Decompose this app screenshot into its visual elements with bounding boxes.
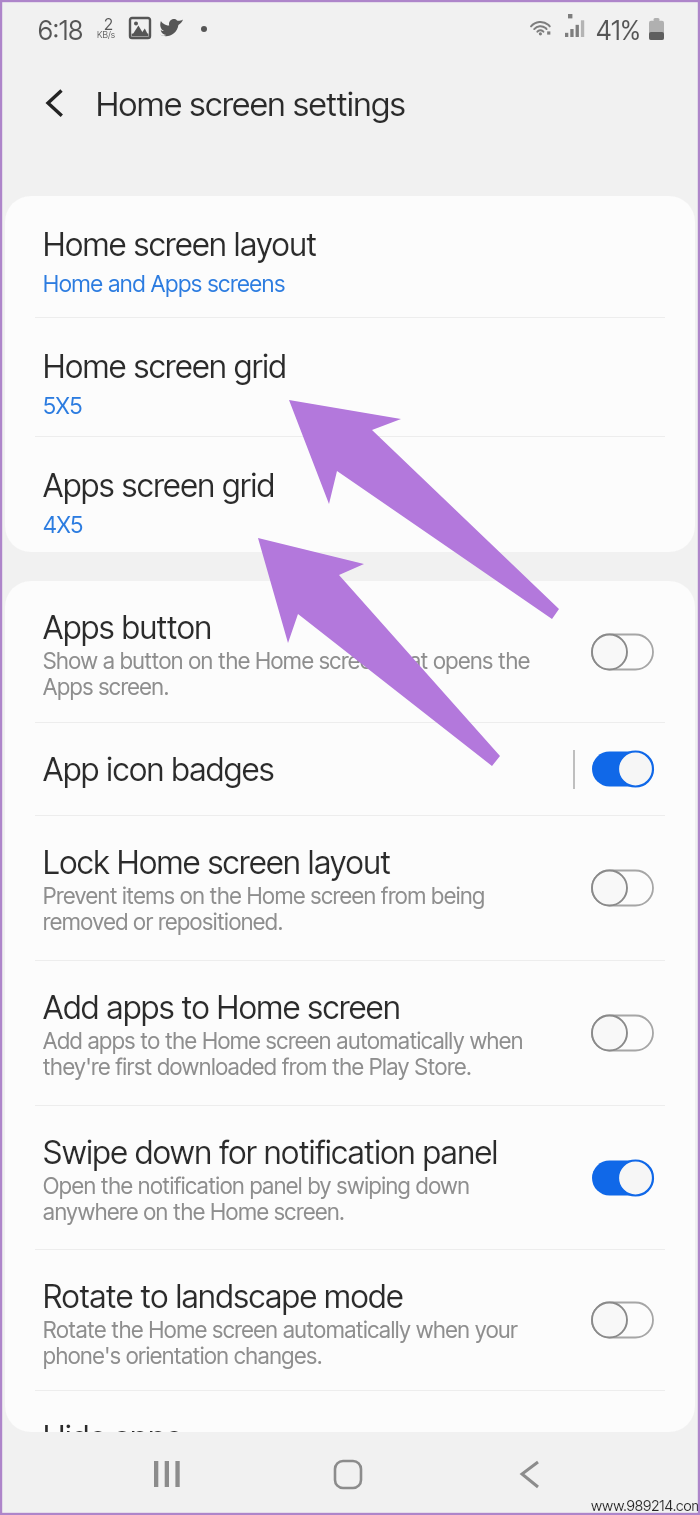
staticText: Add apps to the Home screen automaticall… [43,1027,539,1080]
staticText: 2 [104,14,113,33]
staticText: Open the notification panel by swiping d… [43,1172,539,1225]
button[interactable]: Add apps to Home screen off [586,1011,662,1055]
staticText: 4X5 [43,511,84,539]
button[interactable]: Lock Home screen layout [5,816,695,960]
staticText: Rotate the Home screen automatically whe… [43,1316,539,1369]
staticText: Apps button [43,608,212,647]
staticText: Add apps to Home screen [43,988,401,1027]
staticText: 41% [596,15,641,46]
button[interactable]: Lock Home screen layout off [586,866,662,910]
button[interactable]: Home screen layout [5,196,695,317]
staticText: Rotate to landscape mode [43,1277,404,1316]
button[interactable]: Swipe down for notification panel [5,1106,695,1249]
button[interactable]: Home screen grid [5,318,695,436]
staticText: 6:18 [38,15,83,46]
staticText: Prevent items on the Home screen from be… [43,882,539,935]
staticText: Lock Home screen layout [43,843,391,882]
button[interactable]: Back [500,1444,560,1504]
staticText: KB/s [97,29,115,40]
button[interactable]: Add apps to Home screen [5,961,695,1105]
button[interactable]: App icon badges [5,723,695,815]
staticText: Apps screen grid [43,466,275,505]
staticText: 5X5 [43,392,83,420]
staticText: www.989214.com [591,1497,700,1515]
staticText: Show a button on the Home screen that op… [43,647,539,700]
button[interactable]: Apps button [5,581,695,722]
staticText: Home and Apps screens [43,270,286,298]
staticText: Home screen grid [43,347,287,386]
button[interactable]: Hide apps [5,1391,695,1432]
button[interactable]: Rotate to landscape mode off [586,1298,662,1342]
button[interactable]: Apps screen grid [5,437,695,552]
button[interactable]: Recent apps [137,1444,197,1504]
staticText: Hide apps [43,1418,182,1432]
button[interactable]: Apps button off [586,630,662,674]
button[interactable]: Swipe down for notification panel on [586,1156,662,1200]
button[interactable]: App icon badges on [586,747,662,791]
button[interactable]: Home [318,1444,378,1504]
staticText: Swipe down for notification panel [43,1133,498,1172]
staticText: App icon badges [43,750,275,789]
staticText: Home screen layout [43,225,317,264]
staticText: Home screen settings [96,84,406,124]
button[interactable]: Back [28,76,84,132]
button[interactable]: Rotate to landscape mode [5,1250,695,1390]
